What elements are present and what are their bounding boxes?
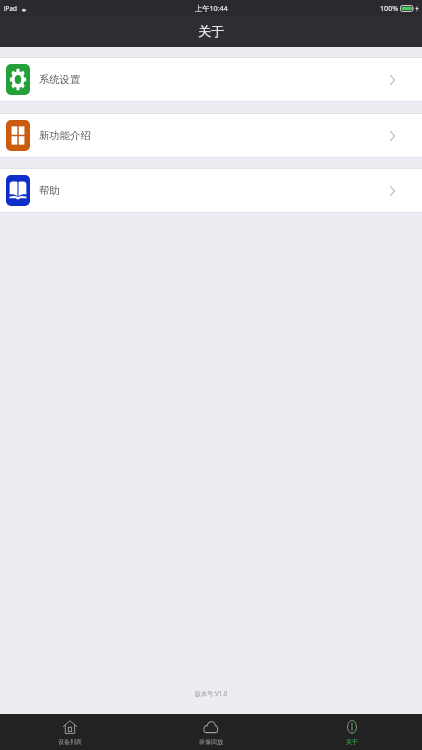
button[interactable]: Help (0, 169, 422, 212)
staticText: 系统设置 (39, 73, 81, 86)
staticText: 帮助 (39, 184, 60, 197)
staticText: 100% (380, 3, 399, 13)
other: Open (390, 186, 395, 196)
staticText: 版本号:V1.0 (0, 689, 422, 697)
other: Help (6, 175, 30, 206)
staticText: 录像回放 (199, 738, 223, 746)
other: Open (390, 75, 395, 85)
staticText: 设备列表 (58, 738, 82, 746)
staticText: iPad (4, 4, 17, 13)
staticText: 关于 (346, 738, 358, 746)
button[interactable]: 关于 (281, 714, 422, 750)
other: New features (6, 120, 30, 151)
staticText: 关于 (198, 23, 224, 39)
other: Open (390, 131, 395, 141)
button[interactable]: 录像回放 (140, 714, 281, 750)
other: Settings (6, 64, 30, 95)
button[interactable]: Settings (0, 58, 422, 101)
button[interactable]: 设备列表 (0, 714, 140, 750)
staticText: 新功能介绍 (39, 129, 91, 142)
button[interactable]: New features (0, 114, 422, 157)
staticText: 上午10:44 (195, 3, 228, 13)
